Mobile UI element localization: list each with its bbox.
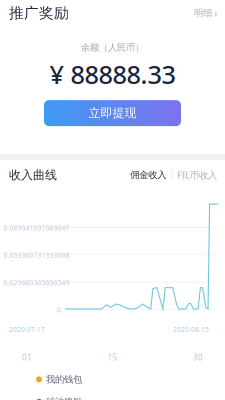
staticText: 矿池奖励 — [46, 396, 82, 400]
button[interactable]: 佣金收入 — [130, 165, 166, 185]
staticText: FIL币收入 — [177, 169, 217, 181]
staticText: 余额（人民币） — [81, 42, 144, 53]
staticText: 15 — [107, 352, 117, 363]
staticText: 立即提现 — [88, 106, 136, 120]
staticText: › — [214, 6, 217, 20]
button[interactable]: 矿池奖励 — [36, 396, 82, 400]
staticText: 明细 — [194, 7, 212, 19]
staticText: 0 — [57, 305, 61, 314]
staticText: 佣金收入 — [130, 169, 166, 181]
staticText: 推广奖励 — [9, 4, 69, 22]
staticText: 0.059360731393098 — [3, 251, 69, 260]
staticText: 2020-08-15 — [173, 325, 209, 334]
staticText: 2020-07-17 — [9, 325, 45, 334]
staticText: 01 — [22, 352, 32, 363]
staticText: 收入曲线 — [9, 168, 57, 182]
button[interactable]: FIL币收入 — [177, 165, 217, 185]
staticText: 30 — [193, 352, 203, 363]
button[interactable]: 明细 — [194, 1, 217, 25]
button[interactable]: 我的钱包 — [36, 374, 82, 385]
button[interactable]: 立即提现 — [44, 100, 181, 126]
staticText: ¥ 88888.33 — [49, 57, 175, 91]
staticText: 0.029680365696549 — [3, 278, 69, 287]
staticText: 0.089041097089647 — [3, 224, 69, 232]
staticText: 我的钱包 — [46, 374, 82, 385]
